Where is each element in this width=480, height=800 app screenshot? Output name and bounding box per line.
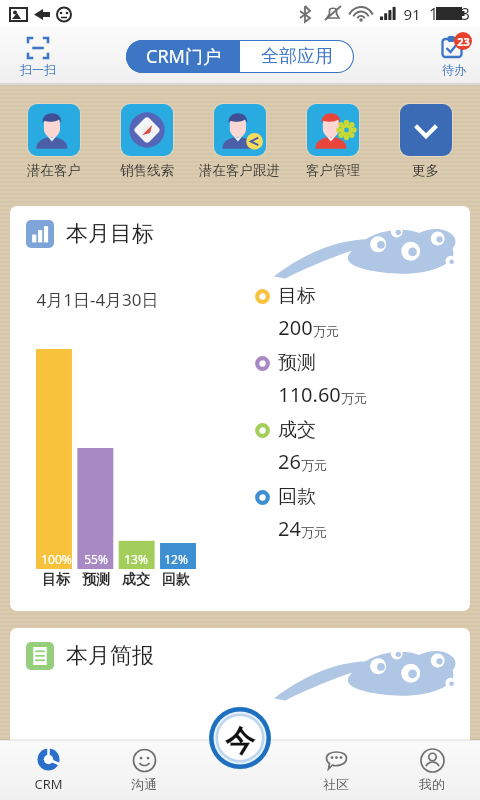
staticText: 扫一扫 <box>20 62 56 77</box>
staticText: 17:23 <box>429 3 470 25</box>
button[interactable]: 社区 <box>288 740 384 800</box>
button[interactable]: CRM门户 <box>126 40 240 73</box>
button[interactable]: 潜在客户 <box>8 100 100 183</box>
button[interactable]: 1 <box>18 746 168 786</box>
button[interactable]: 潜在客户跟进 <box>193 100 286 183</box>
staticText: 0 <box>218 753 232 786</box>
button[interactable]: 更多 <box>379 100 472 183</box>
staticText: 更多 <box>412 162 439 179</box>
staticText: 100% <box>41 551 72 567</box>
staticText: CRM <box>34 775 63 793</box>
staticText: 成交 <box>278 418 316 442</box>
staticText: 回款 <box>162 571 190 589</box>
button[interactable]: 我的 <box>384 740 480 800</box>
staticText: 目标 <box>278 284 316 308</box>
staticText: 我的 <box>419 776 445 792</box>
staticText: 110.60 <box>278 381 341 408</box>
staticText: 目标 <box>42 571 70 589</box>
button[interactable]: 待办 <box>437 35 470 77</box>
staticText: 13% <box>124 551 148 567</box>
staticText: 销售线索 <box>120 162 174 179</box>
staticText: 12% <box>164 551 188 567</box>
staticText: 预测 <box>278 351 316 375</box>
button[interactable]: 全部应用 <box>240 40 354 73</box>
staticText: 26 <box>278 448 301 475</box>
staticText: 23 <box>457 34 470 49</box>
button[interactable]: 0 <box>168 746 319 786</box>
staticText: 社区 <box>323 776 349 792</box>
staticText: 潜在客户 <box>27 162 81 179</box>
button[interactable]: 客户管理 <box>286 100 379 183</box>
staticText: 55% <box>84 551 108 567</box>
staticText: 万元 <box>341 390 367 406</box>
staticText: 本月目标 <box>66 220 154 248</box>
staticText: 本月简报 <box>66 642 154 670</box>
staticText: 潜在客户跟进 <box>199 162 280 179</box>
button[interactable]: CRM <box>0 740 96 800</box>
staticText: 万元 <box>301 524 327 540</box>
staticText: 成交 <box>122 571 150 589</box>
staticText: 24 <box>278 515 301 542</box>
staticText: 万元 <box>313 323 339 339</box>
staticText: 200 <box>278 314 313 341</box>
staticText: 沟通 <box>131 776 157 792</box>
button[interactable]: 扫一扫 <box>14 34 62 79</box>
button[interactable]: 0 <box>319 746 470 786</box>
staticText: 回款 <box>278 485 316 509</box>
staticText: CRM门户 <box>146 44 221 69</box>
button[interactable]: 今日事 <box>203 708 277 768</box>
staticText: 预测 <box>82 571 110 589</box>
staticText: 4月1日-4月30日 <box>36 288 159 311</box>
staticText: 今 <box>225 722 255 760</box>
staticText: 个 <box>232 767 245 783</box>
button[interactable]: 沟通 <box>96 740 192 800</box>
staticText: 全部应用 <box>261 45 333 68</box>
staticText: 万元 <box>301 457 327 473</box>
button[interactable]: 销售线索 <box>100 100 193 183</box>
staticText: 客户管理 <box>306 162 360 179</box>
staticText: 91 <box>403 4 421 24</box>
staticText: 待办 <box>442 62 466 77</box>
